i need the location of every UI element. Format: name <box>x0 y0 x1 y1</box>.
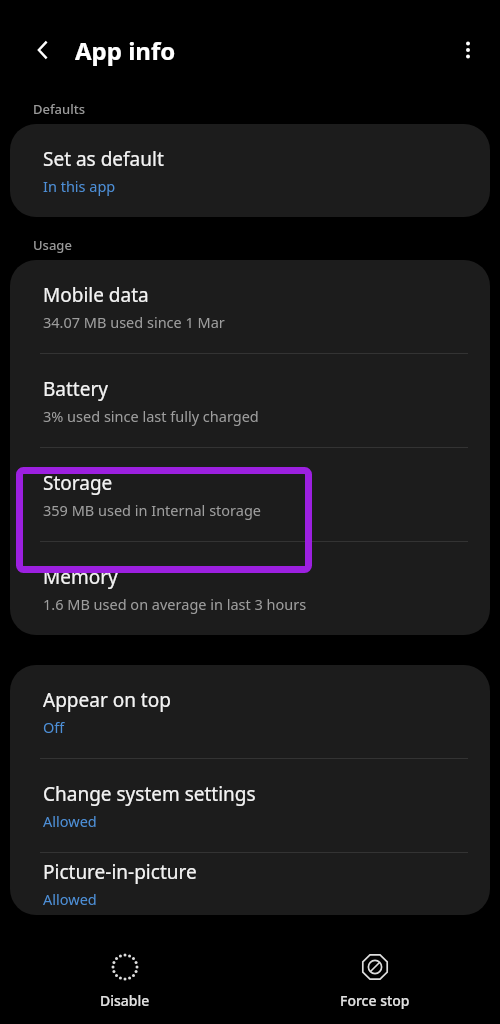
staticText: Picture-in-picture <box>43 859 197 885</box>
staticText: Usage <box>33 236 72 254</box>
button[interactable]: Storage <box>10 448 490 541</box>
button[interactable]: Battery <box>10 354 490 447</box>
staticText: Disable <box>100 991 150 1010</box>
staticText: Memory <box>43 564 118 590</box>
staticText: In this app <box>43 176 116 196</box>
staticText: Storage <box>43 470 113 496</box>
button[interactable]: Force stop <box>250 937 500 1024</box>
staticText: App info <box>75 34 176 67</box>
button[interactable]: Picture-in-picture <box>10 853 490 915</box>
staticText: Change system settings <box>43 781 256 807</box>
button[interactable]: Back <box>19 26 67 74</box>
staticText: Defaults <box>33 100 86 118</box>
staticText: Mobile data <box>43 282 149 308</box>
button[interactable]: Disable <box>0 937 250 1024</box>
button[interactable]: Mobile data <box>10 260 490 353</box>
staticText: 34.07 MB used since 1 Mar <box>43 312 225 332</box>
button[interactable]: More options <box>444 26 492 74</box>
staticText: 3% used since last fully charged <box>43 406 259 426</box>
button[interactable]: Memory <box>10 542 490 635</box>
staticText: Off <box>43 717 65 737</box>
staticText: 359 MB used in Internal storage <box>43 500 262 520</box>
staticText: Force stop <box>340 991 410 1010</box>
staticText: Battery <box>43 376 108 402</box>
staticText: Allowed <box>43 811 97 831</box>
button[interactable]: Change system settings <box>10 759 490 852</box>
staticText: Set as default <box>43 146 164 172</box>
button[interactable]: Appear on top <box>10 665 490 758</box>
staticText: Allowed <box>43 889 97 909</box>
staticText: Appear on top <box>43 687 171 713</box>
button[interactable]: Set as default <box>10 124 490 217</box>
staticText: 1.6 MB used on average in last 3 hours <box>43 594 307 614</box>
